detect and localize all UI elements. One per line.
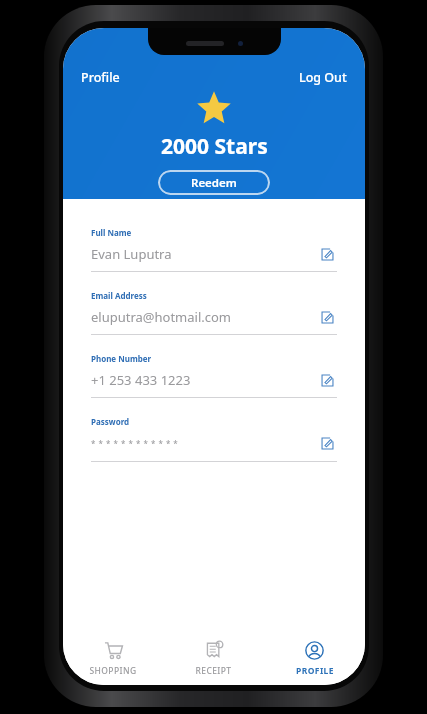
staticText: Email Address bbox=[91, 290, 147, 301]
button[interactable]: RECEIPT bbox=[163, 633, 264, 685]
button[interactable]: Phone Number bbox=[91, 353, 337, 416]
staticText: Full Name bbox=[91, 227, 132, 238]
button[interactable]: Edit Password bbox=[317, 433, 337, 453]
button[interactable]: SHOPPING bbox=[63, 633, 163, 685]
staticText: 2000 Stars bbox=[161, 132, 268, 161]
staticText: +1 253 433 1223 bbox=[91, 371, 317, 389]
staticText: RECEIPT bbox=[195, 665, 232, 677]
staticText: eluputra@hotmail.com bbox=[91, 308, 317, 326]
button[interactable]: Edit Phone Number bbox=[317, 370, 337, 390]
staticText: Log Out bbox=[299, 69, 347, 86]
button[interactable]: PROFILE bbox=[264, 633, 365, 685]
button[interactable]: Edit Email Address bbox=[317, 307, 337, 327]
button[interactable]: Profile bbox=[79, 66, 122, 89]
staticText: Profile bbox=[81, 69, 120, 86]
staticText: PROFILE bbox=[296, 665, 334, 677]
button[interactable]: Full Name bbox=[91, 227, 337, 290]
button[interactable]: Log Out bbox=[297, 66, 349, 89]
staticText: Phone Number bbox=[91, 353, 152, 364]
button[interactable]: Password bbox=[91, 416, 337, 480]
button[interactable]: Edit Full Name bbox=[317, 244, 337, 264]
staticText: Reedem bbox=[191, 175, 237, 191]
staticText: Password bbox=[91, 416, 130, 427]
button[interactable]: Email Address bbox=[91, 290, 337, 353]
staticText: * * * * * * * * * * * * bbox=[91, 438, 317, 449]
staticText: Evan Luputra bbox=[91, 245, 317, 263]
button[interactable]: Reedem bbox=[158, 170, 270, 195]
staticText: SHOPPING bbox=[89, 665, 137, 677]
